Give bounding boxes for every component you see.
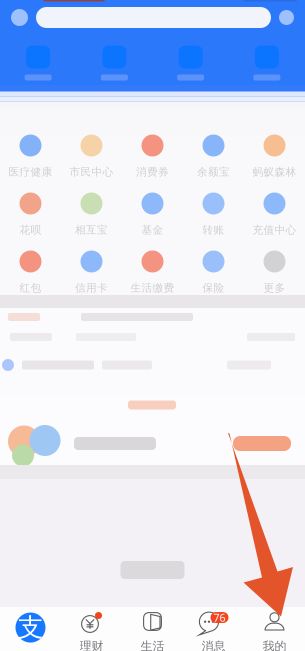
staticText: 76 bbox=[213, 610, 225, 625]
button[interactable]: 基金 bbox=[122, 192, 183, 250]
button[interactable]: 理财 bbox=[61, 607, 122, 651]
button[interactable]: 消费券 bbox=[122, 134, 183, 192]
staticText: 生活 bbox=[140, 639, 164, 651]
staticText: 信用卡 bbox=[75, 281, 108, 295]
staticText: 消费券 bbox=[136, 165, 169, 179]
staticText: 余额宝 bbox=[197, 165, 230, 179]
staticText: 充值中心 bbox=[252, 223, 296, 237]
button[interactable]: 生活缴费 bbox=[122, 250, 183, 308]
staticText: 花呗 bbox=[19, 223, 41, 237]
button[interactable]: 收付款 bbox=[76, 45, 152, 80]
button[interactable]: 医疗健康 bbox=[0, 134, 61, 192]
staticText: 医疗健康 bbox=[8, 165, 52, 179]
button[interactable]: 76 bbox=[183, 607, 244, 651]
staticText: 蚂蚁森林 bbox=[252, 165, 296, 179]
staticText: 消息 bbox=[201, 639, 225, 651]
button[interactable]: 我的 bbox=[244, 607, 305, 651]
button[interactable]: 保险 bbox=[183, 250, 244, 308]
button[interactable]: 搜索 bbox=[36, 7, 271, 28]
staticText: 生活缴费 bbox=[130, 281, 174, 295]
staticText: 市民中心 bbox=[69, 165, 113, 179]
button[interactable]: 花呗 bbox=[0, 192, 61, 250]
button[interactable]: 余额宝 bbox=[183, 134, 244, 192]
button[interactable]: 出行 bbox=[152, 45, 229, 80]
staticText: 我的 bbox=[262, 639, 286, 651]
staticText: 支 bbox=[18, 612, 43, 643]
button[interactable]: 扫一扫 bbox=[0, 45, 76, 80]
staticText: 更多 bbox=[263, 281, 285, 295]
button[interactable]: 更多 bbox=[244, 250, 305, 308]
button[interactable]: 充值中心 bbox=[244, 192, 305, 250]
staticText: 转账 bbox=[202, 223, 224, 237]
button[interactable]: 相互宝 bbox=[61, 192, 122, 250]
staticText: 红包 bbox=[19, 281, 41, 295]
staticText: 保险 bbox=[202, 281, 224, 295]
button[interactable]: 生活 bbox=[122, 607, 183, 651]
button[interactable]: 市民中心 bbox=[61, 134, 122, 192]
button[interactable]: 卡包 bbox=[229, 45, 305, 80]
button[interactable]: 添加朋友 bbox=[279, 10, 294, 25]
button[interactable]: 支付宝 bbox=[0, 607, 61, 651]
button[interactable]: 转账 bbox=[183, 192, 244, 250]
button[interactable]: 红包 bbox=[0, 250, 61, 308]
button[interactable]: 扫码 bbox=[11, 9, 28, 26]
staticText: 基金 bbox=[141, 223, 163, 237]
button[interactable]: 信用卡 bbox=[61, 250, 122, 308]
button[interactable]: 蚂蚁森林 bbox=[244, 134, 305, 192]
staticText: 相互宝 bbox=[75, 223, 108, 237]
staticText: 理财 bbox=[79, 639, 103, 651]
